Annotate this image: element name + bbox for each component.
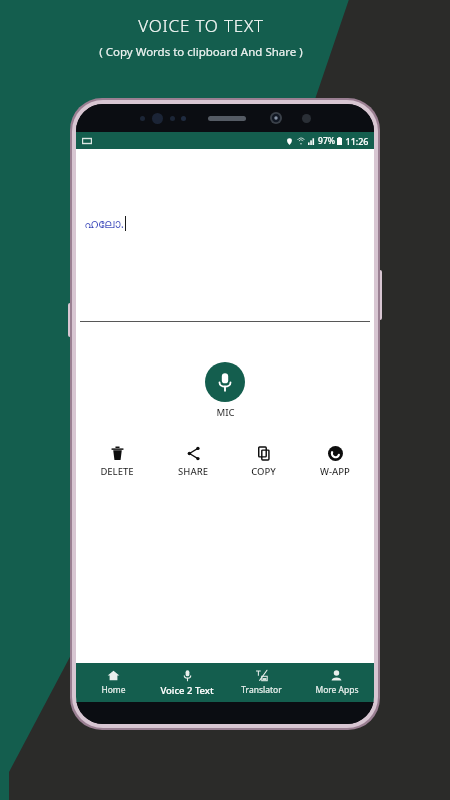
button[interactable]: W-APP xyxy=(318,445,352,478)
staticText: ( Copy Words to clipboard And Share ) xyxy=(99,44,303,60)
button[interactable]: Translator xyxy=(224,663,299,702)
staticText: COPY xyxy=(251,465,276,478)
staticText: W-APP xyxy=(320,465,350,478)
button[interactable]: COPY xyxy=(249,445,278,478)
staticText: Voice 2 Text xyxy=(160,684,214,697)
staticText: 97% xyxy=(318,135,335,147)
staticText: SHARE xyxy=(178,465,208,478)
staticText: MIC xyxy=(216,406,235,419)
button[interactable]: Start voice recording xyxy=(205,362,245,419)
button[interactable]: More Apps xyxy=(299,663,374,702)
button[interactable]: Voice 2 Text xyxy=(150,663,224,702)
other: Start voice recording xyxy=(205,362,245,402)
staticText: DELETE xyxy=(100,465,134,478)
staticText: Translator xyxy=(241,684,282,696)
button[interactable]: DELETE xyxy=(98,445,136,478)
staticText: Home xyxy=(101,684,126,696)
staticText: ഹലോ. xyxy=(84,215,124,231)
staticText: 11:26 xyxy=(345,135,369,147)
button[interactable]: Home xyxy=(76,663,150,702)
staticText: VOICE TO TEXT xyxy=(138,14,264,37)
staticText: More Apps xyxy=(315,684,359,696)
button[interactable]: SHARE xyxy=(176,445,210,478)
